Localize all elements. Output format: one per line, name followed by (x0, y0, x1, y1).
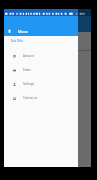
staticText: Sub Title (11, 39, 23, 43)
staticText: Contact us (23, 96, 38, 100)
button[interactable]: Settings (4, 77, 78, 91)
button[interactable]: Mixxx (8, 28, 28, 34)
button[interactable]: Contact us (4, 91, 78, 105)
button[interactable]: Account (4, 49, 78, 63)
staticText: Mixxx (18, 29, 28, 34)
staticText: Inbox (23, 68, 31, 72)
staticText: Account (23, 54, 34, 58)
button[interactable]: Inbox (4, 63, 78, 77)
staticText: Settings (23, 82, 34, 86)
